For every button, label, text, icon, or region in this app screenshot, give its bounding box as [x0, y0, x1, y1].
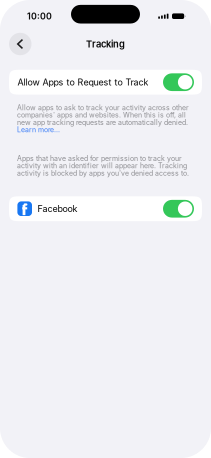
staticText: new app tracking requests are automatica… [17, 118, 188, 127]
staticText: Learn more... [17, 125, 60, 134]
staticText: 10:00 [27, 11, 52, 21]
button[interactable]: Allow Apps to Request to Track [9, 70, 202, 95]
button[interactable]: Back [8, 32, 32, 56]
staticText: Allow apps to ask to track your activity… [17, 104, 189, 112]
staticText: Facebook [38, 203, 78, 214]
staticText: Tracking [86, 38, 125, 50]
staticText: Allow Apps to Request to Track [17, 77, 148, 88]
button[interactable]: Facebook [9, 196, 202, 221]
button[interactable]: Learn more... [17, 125, 60, 134]
staticText: Apps that have asked for permission to t… [17, 154, 182, 163]
staticText: activity is blocked by apps you've denie… [17, 169, 189, 177]
staticText: companies' apps and websites. When this … [17, 111, 186, 119]
staticText: activity with an identifier will appear … [17, 162, 187, 170]
